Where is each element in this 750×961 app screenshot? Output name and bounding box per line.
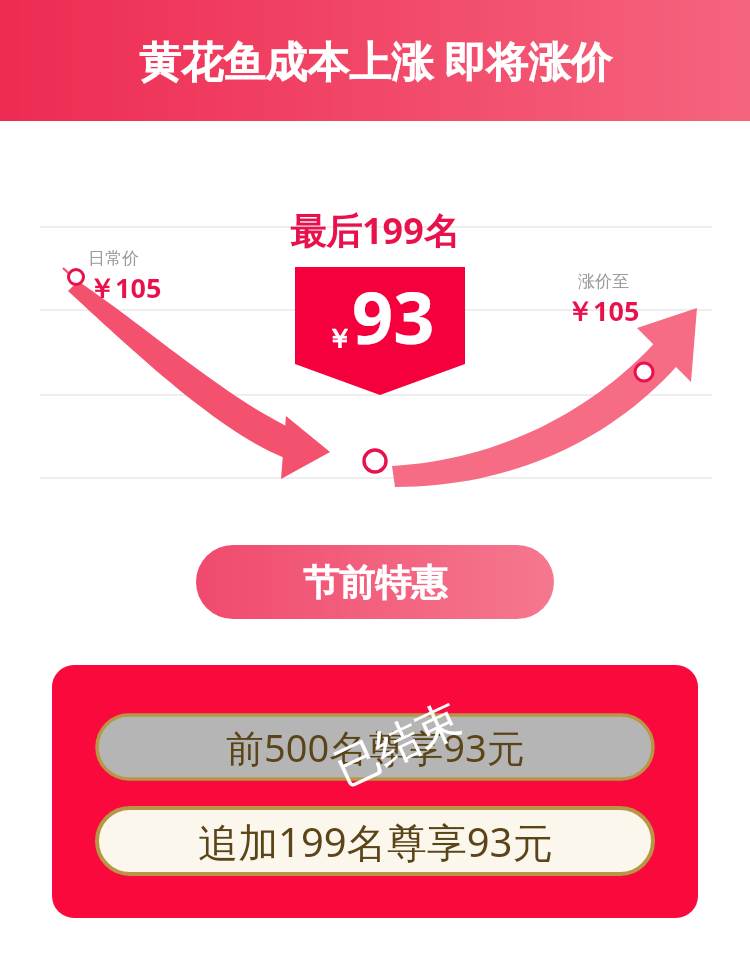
staticText: ￥105	[566, 292, 640, 329]
staticText: 黄花鱼成本上涨 即将涨价	[139, 32, 612, 89]
staticText: 节前特惠	[303, 560, 447, 605]
button[interactable]: 黄花鱼成本上涨 即将涨价	[0, 0, 750, 121]
staticText: 追加199名尊享93元	[198, 814, 553, 869]
staticText: 已结束	[327, 692, 469, 797]
staticText: 93	[352, 267, 435, 364]
button[interactable]: 节前特惠	[196, 545, 554, 619]
button[interactable]: 追加199名尊享93元	[97, 808, 653, 874]
button[interactable]: 前500名尊享93元	[97, 715, 653, 779]
staticText: ￥	[326, 323, 352, 356]
staticText: ￥105	[88, 269, 162, 306]
staticText: 前500名尊享93元	[226, 721, 525, 773]
staticText: 日常价	[88, 248, 139, 269]
staticText: 涨价至	[578, 271, 629, 292]
staticText: 最后199名	[290, 206, 460, 255]
